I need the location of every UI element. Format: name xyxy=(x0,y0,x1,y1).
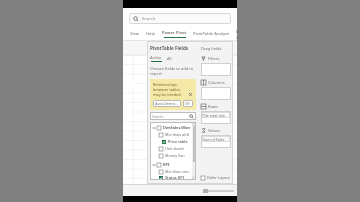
button[interactable]: View xyxy=(127,28,143,40)
staticText: PivotTable Analyze xyxy=(193,31,230,37)
staticText: Values xyxy=(208,128,221,133)
staticText: PivotTable Fields xyxy=(150,45,189,51)
staticText: Choose fields to add to xyxy=(150,66,194,71)
staticText: Defer Layout Up xyxy=(207,175,231,180)
staticText: Auto-Detect... xyxy=(155,101,179,106)
button[interactable]: Design xyxy=(233,28,237,40)
staticText: DimSales.MixerView xyxy=(163,125,191,130)
staticText: CREATE... xyxy=(185,101,191,106)
button[interactable]: Search xyxy=(150,112,196,120)
staticText: report: xyxy=(150,71,163,76)
button[interactable]: Help xyxy=(143,28,159,40)
staticText: Mix thais alr# xyxy=(165,132,190,137)
button[interactable]: Filters xyxy=(201,56,231,76)
staticText: Search xyxy=(142,16,156,22)
button[interactable]: Power Pivot xyxy=(159,28,190,40)
button[interactable]: Values xyxy=(201,128,231,148)
staticText: Rows xyxy=(208,104,218,109)
staticText: Filters xyxy=(208,56,220,61)
staticText: Drag fields between xyxy=(201,46,231,51)
button[interactable]: Rows xyxy=(201,104,231,124)
staticText: KPI xyxy=(163,162,170,167)
staticText: Help xyxy=(146,31,156,37)
button[interactable]: KPI xyxy=(152,161,191,168)
staticText: may be needed. xyxy=(153,92,182,97)
button[interactable]: Status KPI xyxy=(152,175,191,180)
staticText: Active xyxy=(150,55,162,60)
staticText: Tile relat role xyxy=(203,113,225,118)
staticText: Money San xyxy=(165,153,185,158)
button[interactable]: Columns xyxy=(201,80,231,100)
staticText: Unit sbash xyxy=(165,146,184,151)
button[interactable]: DimSales.MixerView xyxy=(152,124,191,131)
button[interactable]: PivotTable Analyze xyxy=(190,28,233,40)
staticText: Mix thais sins xyxy=(165,169,190,174)
button[interactable]: Mix thais sins xyxy=(152,168,191,175)
button[interactable]: Unit sbash xyxy=(152,145,191,152)
staticText: Status KPI xyxy=(165,175,184,180)
button[interactable]: Auto-Detect... xyxy=(153,100,181,107)
staticText: Power Pivot xyxy=(162,30,187,36)
staticText: View xyxy=(130,31,140,37)
button[interactable]: Search xyxy=(129,13,231,24)
button[interactable]: Defer Layout Up xyxy=(201,175,231,180)
button[interactable]: Price table sales xyxy=(152,138,191,145)
staticText: Search xyxy=(152,114,164,119)
button[interactable]: Mix thais alr# xyxy=(152,131,191,138)
staticText: Relationships between tables xyxy=(153,82,193,92)
staticText: Sum of Sales GFt xyxy=(203,137,229,142)
staticText: All xyxy=(167,56,172,61)
staticText: Price table sales xyxy=(168,139,191,144)
button[interactable]: Money San xyxy=(152,152,191,159)
button[interactable]: CREATE... xyxy=(183,100,193,107)
button[interactable]: Close xyxy=(188,92,193,97)
staticText: Columns xyxy=(208,80,225,85)
